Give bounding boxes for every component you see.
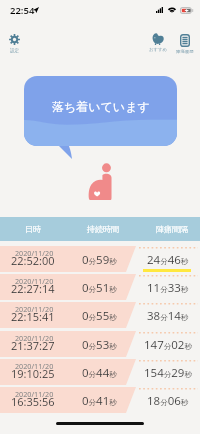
staticText: 落ち着いています [52, 99, 150, 114]
staticText: 陣痛履歴 [176, 49, 194, 55]
staticText: 2020/11/20 [15, 248, 54, 258]
button[interactable]: 2020/11/20 [0, 359, 200, 385]
staticText: 18分06秒 [147, 393, 189, 409]
staticText: 22:54 [10, 4, 35, 17]
staticText: 0分53秒 [82, 337, 117, 353]
staticText: 22:52:00 [11, 253, 55, 268]
staticText: 0分41秒 [82, 393, 117, 409]
staticText: 0分51秒 [82, 280, 117, 296]
button[interactable]: 2020/11/20 [0, 302, 200, 328]
staticText: 21:37:27 [11, 338, 55, 353]
button[interactable]: 2020/11/20 [0, 246, 200, 272]
staticText: 2020/11/20 [15, 304, 54, 314]
staticText: 38分14秒 [147, 308, 189, 324]
staticText: 154分29秒 [144, 365, 192, 381]
staticText: 0分59秒 [82, 252, 117, 268]
button[interactable]: おすすめ [145, 33, 171, 53]
staticText: 2020/11/20 [15, 333, 54, 343]
button[interactable]: 2020/11/20 [0, 274, 200, 300]
staticText: 2020/11/20 [15, 276, 54, 286]
staticText: 11分33秒 [147, 280, 189, 296]
staticText: 22:27:14 [11, 281, 55, 296]
staticText: 147分02秒 [144, 337, 192, 353]
staticText: おすすめ [149, 47, 167, 53]
button[interactable]: 設定 [5, 34, 24, 54]
staticText: 16:35:56 [11, 394, 55, 409]
button[interactable]: 2020/11/20 [0, 387, 200, 413]
staticText: 陣痛間隔 [156, 224, 188, 234]
staticText: 22:15:41 [11, 309, 55, 324]
staticText: 設定 [10, 48, 20, 54]
staticText: 19:10:25 [11, 366, 55, 381]
staticText: 0分44秒 [82, 365, 117, 381]
button[interactable]: 2020/11/20 [0, 331, 200, 357]
staticText: 2020/11/20 [15, 361, 54, 371]
staticText: 24分46秒 [147, 252, 189, 268]
button[interactable]: 陣痛履歴 [172, 34, 198, 55]
staticText: 2020/11/20 [15, 389, 54, 399]
staticText: 持続時間 [87, 224, 119, 234]
staticText: 0分55秒 [82, 308, 117, 324]
staticText: 日時 [25, 224, 41, 234]
